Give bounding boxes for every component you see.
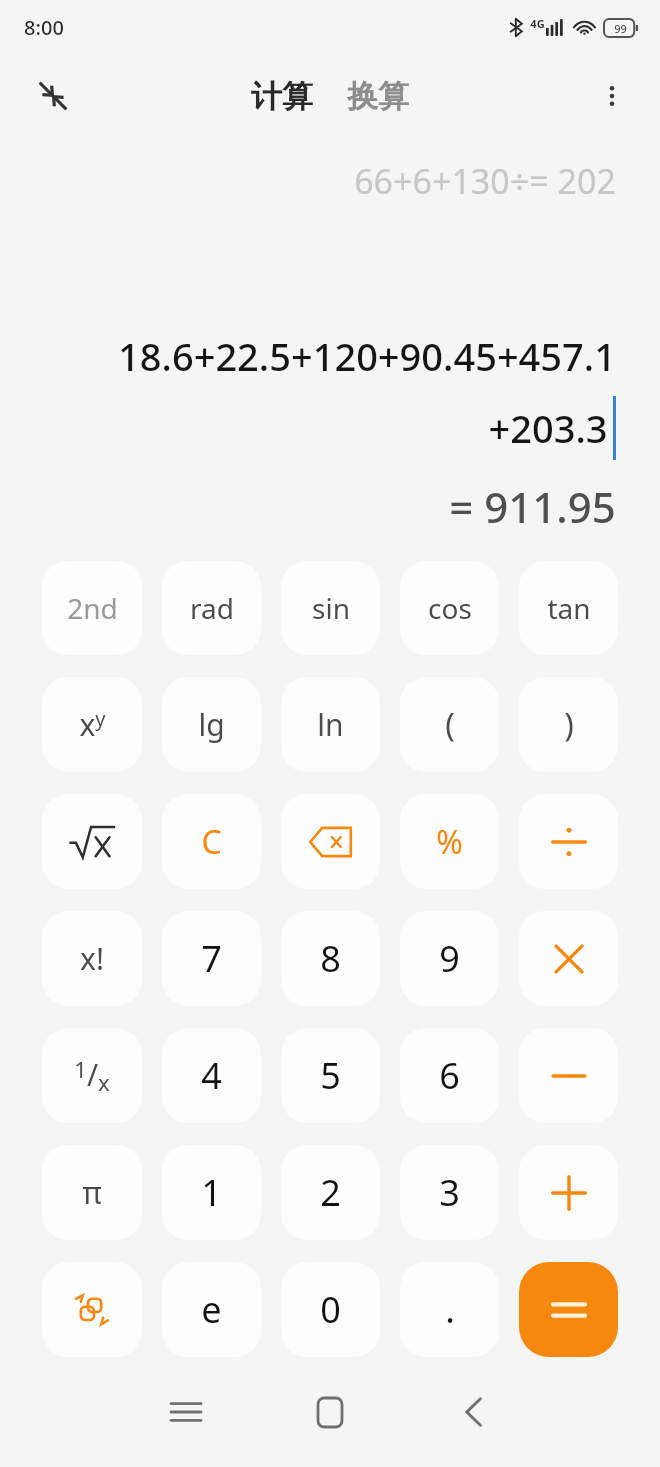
button[interactable]: tan [519, 561, 618, 655]
button[interactable]: Minus [519, 1028, 618, 1123]
button[interactable]: sin [281, 561, 380, 655]
staticText: sin [312, 589, 350, 627]
staticText: ln [317, 704, 344, 745]
staticText: 4 [201, 1051, 222, 1100]
staticText: 7 [201, 934, 222, 983]
staticText: 换算 [347, 77, 409, 116]
button[interactable]: rad [162, 561, 261, 655]
button[interactable]: 5 [281, 1028, 380, 1123]
button[interactable]: . [400, 1262, 499, 1357]
button[interactable]: 1/x [42, 1028, 142, 1123]
staticText: 3 [439, 1168, 460, 1217]
staticText: 6 [439, 1051, 460, 1100]
staticText: 8 [320, 934, 341, 983]
button[interactable]: C [162, 794, 261, 889]
button[interactable]: x! [42, 911, 142, 1006]
button[interactable]: 2 [281, 1145, 380, 1240]
staticText: 1/x [74, 1054, 110, 1097]
button[interactable]: Square root [42, 794, 142, 889]
button[interactable]: 1 [162, 1145, 261, 1240]
staticText: 1 [201, 1168, 222, 1217]
staticText: xy [79, 704, 106, 745]
button[interactable]: Multiply [519, 911, 618, 1006]
staticText: 4G [530, 16, 545, 31]
staticText: tan [547, 589, 591, 627]
staticText: e [201, 1285, 222, 1334]
staticText: . [445, 1285, 455, 1334]
button[interactable]: Divide [519, 794, 618, 889]
button[interactable]: Collapse [24, 67, 82, 125]
staticText: ) [564, 703, 574, 747]
staticText: 18.6+22.5+120+90.45+457.1 [118, 330, 616, 382]
staticText: 9 [439, 934, 460, 983]
button[interactable]: π [42, 1145, 142, 1240]
staticText: 66+6+130÷= 202 [354, 158, 616, 204]
staticText: 5 [320, 1051, 341, 1100]
button[interactable]: 2nd [42, 561, 142, 655]
staticText: = 911.95 [449, 478, 616, 535]
staticText: +203.3 [488, 402, 608, 454]
staticText: C [201, 820, 222, 864]
button[interactable]: % [400, 794, 499, 889]
button[interactable]: Switch calculator mode [42, 1262, 142, 1357]
staticText: cos [428, 589, 472, 627]
button[interactable]: ln [281, 677, 380, 772]
staticText: 8:00 [24, 14, 64, 41]
button[interactable]: 6 [400, 1028, 499, 1123]
staticText: 2nd [67, 589, 118, 627]
staticText: 2 [320, 1168, 341, 1217]
button[interactable]: ) [519, 677, 618, 772]
staticText: 0 [320, 1285, 341, 1334]
button[interactable]: 0 [281, 1262, 380, 1357]
staticText: x! [80, 938, 104, 979]
button[interactable]: Home [282, 1364, 378, 1460]
button[interactable]: Plus [519, 1145, 618, 1240]
button[interactable]: 3 [400, 1145, 499, 1240]
button[interactable]: Equals [519, 1262, 618, 1357]
button[interactable]: Back [426, 1364, 522, 1460]
button[interactable]: 计算 [243, 71, 321, 122]
button[interactable]: cos [400, 561, 499, 655]
button[interactable]: 9 [400, 911, 499, 1006]
button[interactable]: lg [162, 677, 261, 772]
button[interactable]: 7 [162, 911, 261, 1006]
button[interactable]: Backspace [281, 794, 380, 889]
staticText: ( [445, 703, 455, 747]
button[interactable]: Recent apps [138, 1364, 234, 1460]
button[interactable]: ( [400, 677, 499, 772]
button[interactable]: 4 [162, 1028, 261, 1123]
staticText: % [436, 820, 463, 864]
button[interactable]: xy [42, 677, 142, 772]
button[interactable]: 换算 [339, 71, 417, 122]
staticText: lg [198, 704, 225, 745]
staticText: 计算 [251, 77, 313, 116]
staticText: π [82, 1172, 102, 1213]
button[interactable]: e [162, 1262, 261, 1357]
staticText: 99 [614, 21, 627, 36]
button[interactable]: 8 [281, 911, 380, 1006]
button[interactable]: More options [584, 68, 640, 124]
staticText: rad [190, 589, 234, 627]
